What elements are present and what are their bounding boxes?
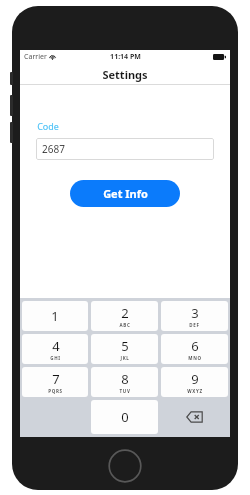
staticText: 11:14 PM <box>110 52 141 62</box>
button[interactable]: 2 <box>91 301 158 331</box>
button[interactable]: 8 <box>91 367 158 397</box>
staticText: Carrier <box>24 52 47 62</box>
staticText: PQRS <box>48 388 63 394</box>
button[interactable]: 2687 <box>36 138 214 160</box>
button[interactable]: 4 <box>22 334 88 364</box>
staticText: MNO <box>188 355 202 361</box>
button[interactable]: 1 <box>22 301 88 331</box>
button[interactable]: 7 <box>22 367 88 397</box>
staticText: ABC <box>119 322 131 328</box>
staticText: TUV <box>119 388 131 394</box>
staticText: 4 <box>52 337 60 355</box>
button[interactable]: 0 <box>91 400 158 434</box>
staticText: WXYZ <box>187 388 203 394</box>
staticText: Settings <box>102 67 148 82</box>
staticText: Get Info <box>103 186 148 201</box>
staticText: Code <box>37 120 59 132</box>
staticText: 1 <box>51 307 59 325</box>
staticText: 0 <box>121 408 129 426</box>
staticText: 3 <box>191 304 199 322</box>
button[interactable]: 5 <box>91 334 158 364</box>
button[interactable]: Get Info <box>70 180 180 207</box>
staticText: 7 <box>52 370 60 388</box>
staticText: 9 <box>191 370 199 388</box>
staticText: 6 <box>191 337 199 355</box>
staticText: 2687 <box>42 142 65 156</box>
staticText: 8 <box>121 370 129 388</box>
button[interactable]: 9 <box>161 367 228 397</box>
staticText: DEF <box>189 322 200 328</box>
staticText: 5 <box>121 337 129 355</box>
button[interactable]: 3 <box>161 301 228 331</box>
staticText: JKL <box>120 355 130 361</box>
staticText: 2 <box>121 304 129 322</box>
staticText: GHI <box>50 355 61 361</box>
button[interactable]: 6 <box>161 334 228 364</box>
button[interactable]: Delete <box>161 400 228 434</box>
